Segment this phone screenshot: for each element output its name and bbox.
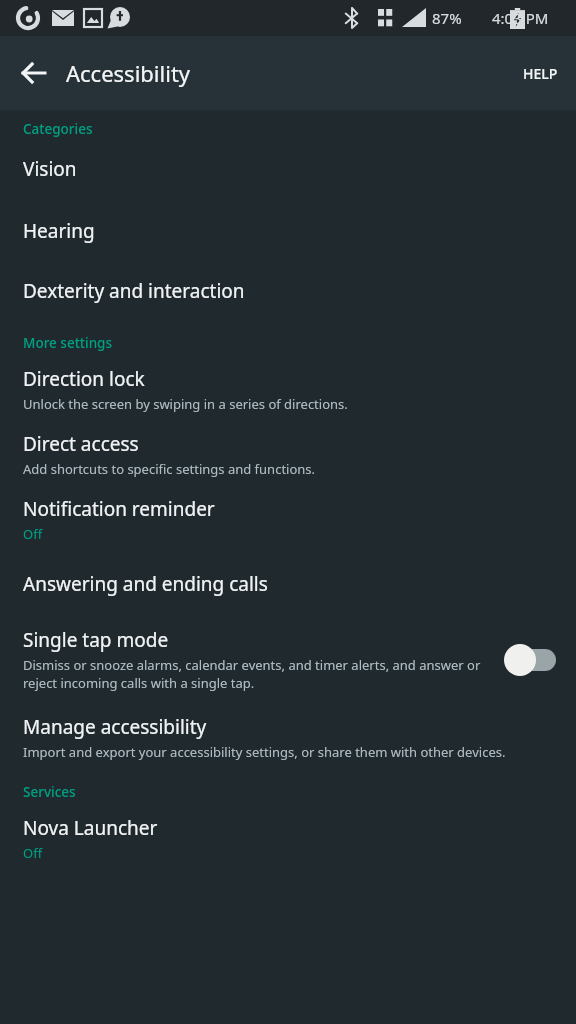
button[interactable]: Direct access: [0, 423, 576, 488]
button[interactable]: Manage accessibility: [0, 704, 576, 771]
staticText: Categories: [23, 120, 93, 138]
button[interactable]: HELP: [505, 50, 576, 97]
staticText: Vision: [23, 156, 77, 182]
staticText: 87%: [432, 8, 462, 28]
button[interactable]: Nova Launcher: [0, 807, 576, 874]
staticText: Hearing: [23, 218, 95, 244]
staticText: Answering and ending calls: [23, 571, 268, 597]
staticText: 4:03 PM: [492, 8, 549, 28]
staticText: Direction lock: [23, 366, 145, 392]
staticText: Direct access: [23, 431, 139, 457]
staticText: Import and export your accessibility set…: [23, 743, 506, 761]
staticText: Off: [23, 844, 43, 862]
staticText: Dexterity and interaction: [23, 278, 245, 304]
button[interactable]: Vision: [0, 138, 576, 200]
button[interactable]: Single tap mode: [0, 615, 576, 704]
button[interactable]: Back: [10, 49, 58, 97]
staticText: HELP: [523, 64, 558, 83]
staticText: Off: [23, 525, 43, 543]
staticText: Notification reminder: [23, 496, 215, 522]
button[interactable]: Answering and ending calls: [0, 553, 576, 615]
staticText: Dismiss or snooze alarms, calendar event…: [23, 656, 486, 692]
button[interactable]: Direction lock: [0, 358, 576, 423]
button[interactable]: Hearing: [0, 200, 576, 262]
button[interactable]: Single tap mode toggle: [498, 640, 560, 680]
staticText: Unlock the screen by swiping in a series…: [23, 395, 348, 413]
staticText: Services: [23, 783, 76, 801]
staticText: Accessibility: [66, 58, 191, 88]
button[interactable]: Notification reminder: [0, 488, 576, 553]
staticText: Single tap mode: [23, 627, 169, 653]
button[interactable]: Dexterity and interaction: [0, 262, 576, 320]
staticText: Manage accessibility: [23, 714, 207, 740]
staticText: More settings: [23, 334, 113, 352]
staticText: Nova Launcher: [23, 815, 158, 841]
staticText: Add shortcuts to specific settings and f…: [23, 460, 316, 478]
